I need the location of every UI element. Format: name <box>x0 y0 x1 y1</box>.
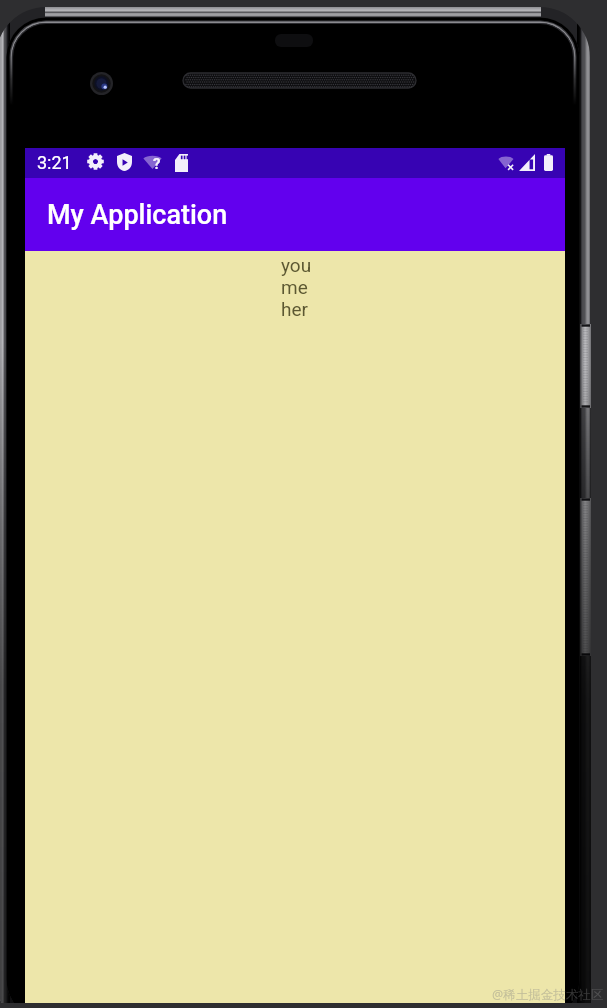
other: Wifi unknown <box>143 153 165 171</box>
other: Play protect <box>117 153 132 171</box>
staticText: 3:21 <box>37 152 72 173</box>
staticText: you <box>281 254 312 276</box>
other: Settings <box>87 153 104 170</box>
button[interactable]: My Application <box>25 178 565 251</box>
other: Wifi off <box>498 155 516 170</box>
other: Battery <box>544 154 553 171</box>
staticText: My Application <box>47 199 228 231</box>
other: SD card <box>175 154 188 172</box>
staticText: @稀土掘金技术社区 <box>492 986 604 1003</box>
staticText: me <box>281 276 308 298</box>
staticText: ? <box>153 155 161 173</box>
other: Mobile signal <box>519 154 535 171</box>
staticText: her <box>281 298 308 320</box>
